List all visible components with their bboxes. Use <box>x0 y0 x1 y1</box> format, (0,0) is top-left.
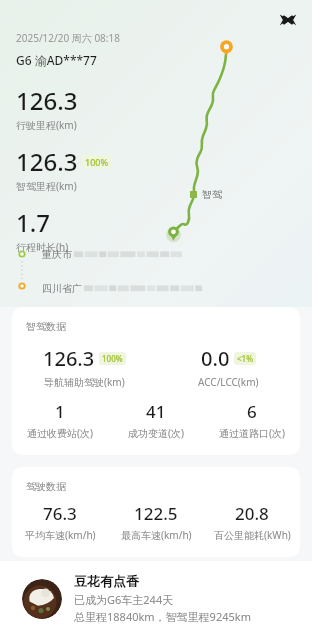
staticText: 122.5 <box>134 502 178 525</box>
staticText: 通过收费站(次) <box>27 426 93 440</box>
staticText: 126.3 <box>43 345 95 372</box>
staticText: 重庆市 <box>42 248 72 261</box>
staticText: 已成为G6车主244天 <box>74 592 174 607</box>
staticText: 智驾数据 <box>26 320 66 333</box>
staticText: <1% <box>237 353 253 364</box>
staticText: 41 <box>146 400 166 423</box>
staticText: 0.0 <box>201 345 230 372</box>
staticText: 四川省广 <box>42 282 82 295</box>
staticText: 1.7 <box>16 206 50 239</box>
staticText: 行驶里程(km) <box>16 118 77 132</box>
staticText: 126.3 <box>16 145 78 178</box>
button[interactable]: Close <box>272 4 304 36</box>
staticText: G6 渝AD***77 <box>16 52 97 68</box>
staticText: 20.8 <box>235 502 269 525</box>
staticText: 百公里能耗(kWh) <box>214 528 291 542</box>
staticText: 126.3 <box>16 84 78 117</box>
staticText: 成功变道(次) <box>128 426 184 440</box>
staticText: 100% <box>102 353 123 364</box>
staticText: 导航辅助驾驶(km) <box>44 375 125 389</box>
button[interactable]: 智驾数据 <box>12 307 300 455</box>
staticText: 智驾里程(km) <box>16 179 77 193</box>
staticText: 豆花有点香 <box>74 573 139 589</box>
staticText: 6 <box>247 400 257 423</box>
staticText: 智驾 <box>202 188 222 201</box>
staticText: 驾驶数据 <box>26 480 66 493</box>
staticText: 1 <box>55 400 65 423</box>
staticText: 总里程18840km，智驾里程9245km <box>74 609 251 624</box>
staticText: 通过道路口(次) <box>219 426 285 440</box>
staticText: ACC/LCC(km) <box>198 375 259 389</box>
staticText: 100% <box>85 156 109 168</box>
staticText: 最高车速(km/h) <box>121 528 192 542</box>
staticText: 2025/12/20 周六 08:18 <box>16 31 120 45</box>
staticText: 平均车速(km/h) <box>25 528 96 542</box>
button[interactable]: 豆花有点香 <box>0 561 312 638</box>
staticText: 行程时长(h) <box>16 240 69 254</box>
button[interactable]: 驾驶数据 <box>12 467 300 557</box>
staticText: 76.3 <box>43 502 77 525</box>
